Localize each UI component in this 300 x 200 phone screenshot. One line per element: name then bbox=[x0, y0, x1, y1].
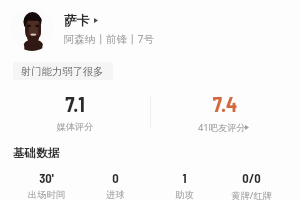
staticText: 30' bbox=[12, 170, 81, 185]
staticText: 41吧友评分 bbox=[198, 121, 246, 134]
staticText: 0 bbox=[81, 170, 150, 185]
staticText: 7.1 bbox=[0, 91, 150, 116]
staticText: 射门能力弱了很多 bbox=[21, 65, 104, 78]
staticText: 进球 bbox=[81, 189, 150, 200]
staticText: 基础数据 bbox=[13, 146, 60, 161]
button[interactable]: 射门能力弱了很多 bbox=[13, 62, 113, 80]
staticText: 1 bbox=[150, 170, 219, 185]
staticText: 0/0 bbox=[217, 170, 286, 185]
staticText: 阿森纳丨前锋丨7号 bbox=[64, 32, 155, 46]
staticText: 助攻 bbox=[150, 189, 219, 200]
button[interactable]: 1 bbox=[150, 168, 219, 200]
button[interactable]: 7.4 bbox=[150, 90, 300, 134]
staticText: 7.4 bbox=[150, 91, 300, 116]
staticText: 媒体评分 bbox=[0, 121, 150, 133]
staticText: 萨卡 bbox=[64, 13, 90, 29]
staticText: 出场时间 bbox=[12, 189, 81, 200]
button[interactable]: 萨卡 bbox=[62, 10, 100, 28]
button[interactable]: Player photo bbox=[10, 7, 54, 51]
button[interactable]: 0/0 bbox=[217, 168, 286, 200]
button[interactable]: 7.1 bbox=[0, 90, 150, 134]
staticText: 黄牌/红牌 bbox=[217, 189, 286, 200]
button[interactable]: 0 bbox=[81, 168, 150, 200]
button[interactable]: 30' bbox=[12, 168, 81, 200]
